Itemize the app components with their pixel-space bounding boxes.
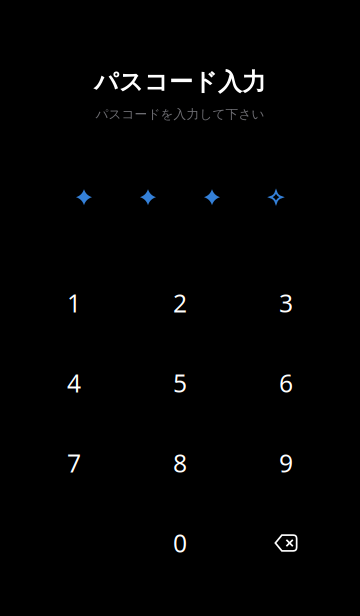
staticText: 4 — [67, 366, 81, 400]
button[interactable]: 3 — [233, 263, 339, 343]
staticText: 7 — [67, 446, 81, 480]
staticText: 8 — [173, 446, 187, 480]
button[interactable]: 7 — [21, 423, 127, 503]
button[interactable]: 2 — [127, 263, 233, 343]
button[interactable]: 9 — [233, 423, 339, 503]
staticText: 9 — [279, 446, 293, 480]
staticText: パスコードを入力して下さい — [95, 106, 264, 122]
button[interactable]: 0 — [127, 503, 233, 583]
button[interactable]: 1 — [21, 263, 127, 343]
staticText: 3 — [279, 286, 293, 320]
staticText: 1 — [67, 286, 81, 320]
button[interactable]: 4 — [21, 343, 127, 423]
staticText: 6 — [279, 366, 293, 400]
staticText: 2 — [173, 286, 187, 320]
staticText: パスコード入力 — [94, 67, 266, 97]
staticText: 0 — [173, 526, 187, 560]
button[interactable]: Delete — [233, 503, 339, 583]
button[interactable]: 6 — [233, 343, 339, 423]
button[interactable]: 5 — [127, 343, 233, 423]
button[interactable]: 8 — [127, 423, 233, 503]
staticText: 5 — [173, 366, 187, 400]
